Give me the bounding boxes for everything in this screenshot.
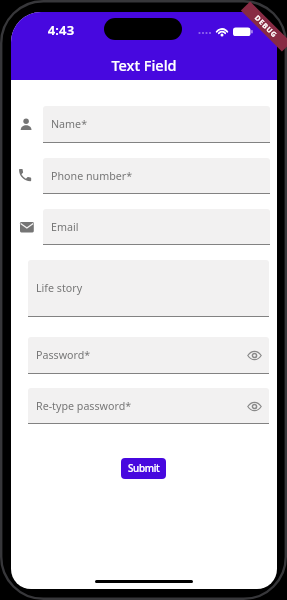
staticText: Name* <box>51 117 88 132</box>
button[interactable]: Phone number* <box>43 158 270 194</box>
staticText: Submit <box>128 462 160 475</box>
staticText: Re-type password* <box>36 399 132 414</box>
staticText: Text Field <box>11 55 277 75</box>
button[interactable]: Life story <box>28 260 269 317</box>
button[interactable]: Re-type password* <box>28 388 269 424</box>
staticText: 4:43 <box>44 21 78 37</box>
staticText: Email <box>51 220 79 235</box>
button[interactable]: Submit <box>121 458 166 479</box>
button[interactable]: Name* <box>43 106 270 143</box>
button[interactable]: Password* <box>28 337 269 374</box>
staticText: Phone number* <box>51 169 133 184</box>
staticText: Life story <box>36 281 83 296</box>
staticText: DEBUG <box>252 13 280 41</box>
staticText: Password* <box>36 348 91 363</box>
button[interactable]: Email <box>43 209 270 245</box>
